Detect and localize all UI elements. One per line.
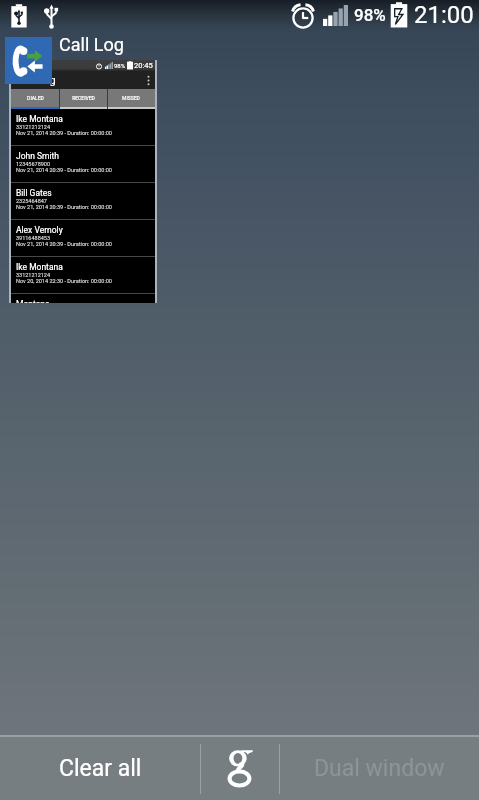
staticText: MISSED <box>122 95 140 101</box>
staticText: DIALED <box>27 95 44 101</box>
button[interactable]: Clear all <box>0 737 200 800</box>
staticText: 20:45 <box>134 61 153 70</box>
staticText: 33121212124 <box>16 272 51 278</box>
button[interactable]: Alex Vernoly <box>11 220 155 256</box>
button[interactable]: John Smith <box>11 146 155 182</box>
button[interactable]: Google Search <box>201 737 279 800</box>
button[interactable]: Bill Gates <box>11 183 155 219</box>
staticText: 2325464847 <box>16 198 47 204</box>
staticText: 98% <box>114 62 126 69</box>
staticText: Montana <box>16 299 50 303</box>
staticText: 39116488453 <box>16 235 51 241</box>
staticText: Bill Gates <box>16 188 52 198</box>
button[interactable]: Dual window <box>280 737 479 800</box>
staticText: Nov 21, 2014 20:39 - Duration: 00:00:00 <box>16 167 112 173</box>
button[interactable]: MISSED <box>107 89 155 109</box>
staticText: Alex Vernoly <box>16 225 63 235</box>
staticText: 12345678900 <box>16 161 51 167</box>
staticText: Call Log <box>59 34 124 55</box>
staticText: 98% <box>354 5 386 25</box>
staticText: Nov 21, 2014 20:39 - Duration: 00:00:00 <box>16 204 112 210</box>
staticText: Call Log <box>16 74 56 87</box>
staticText: Ike Montana <box>16 262 63 272</box>
staticText: 33121212124 <box>16 124 51 130</box>
button[interactable]: Ike Montana <box>11 109 155 145</box>
staticText: Nov 21, 2014 20:39 - Duration: 00:00:00 <box>16 130 112 136</box>
button[interactable]: 98% <box>11 60 155 303</box>
staticText: 21:00 <box>414 1 474 29</box>
staticText: Nov 21, 2014 20:39 - Duration: 00:00:00 <box>16 241 112 247</box>
staticText: John Smith <box>16 151 60 161</box>
staticText: RECEIVED <box>72 95 95 101</box>
button[interactable]: DIALED <box>11 89 59 109</box>
staticText: Ike Montana <box>16 114 63 124</box>
staticText: Clear all <box>59 755 142 782</box>
button[interactable]: Montana <box>11 294 155 303</box>
staticText: Dual window <box>314 755 445 782</box>
staticText: Nov 20, 2014 22:30 - Duration: 00:00:00 <box>16 278 112 284</box>
button[interactable]: Call Log app <box>5 37 52 84</box>
button[interactable]: RECEIVED <box>59 89 107 109</box>
button[interactable]: Ike Montana <box>11 257 155 293</box>
